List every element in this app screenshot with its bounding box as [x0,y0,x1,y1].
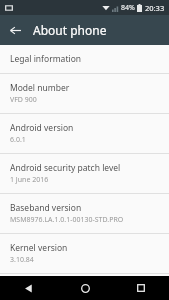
button[interactable]: Back [0,15,30,45]
staticText: Android security patch level [10,162,121,174]
button[interactable]: Android security patch level [0,154,169,193]
staticText: 84% [121,3,135,13]
button[interactable]: Kernel version [0,234,169,273]
staticText: 1 June 2016 [10,175,49,185]
staticText: Legal information [10,53,82,65]
button[interactable]: Home [57,276,113,300]
staticText: 20:33 [145,3,165,13]
staticText: Baseband version [10,202,82,214]
staticText: Android version [10,122,74,134]
staticText: 3.10.84 [10,255,34,265]
staticText: Kernel version [10,242,68,254]
button[interactable]: Back [0,276,57,300]
button[interactable]: Android version [0,114,169,153]
staticText: VFD 900 [10,95,37,105]
staticText: MSM8976.LA.1.0.1-00130-STD.PRO [10,215,124,225]
button[interactable]: Legal information [0,45,169,73]
button[interactable]: Model number [0,74,169,113]
staticText: Model number [10,82,70,94]
staticText: About phone [33,22,107,38]
button[interactable]: Baseband version [0,194,169,233]
staticText: 6.0.1 [10,135,26,145]
button[interactable]: Recent apps [113,276,169,300]
